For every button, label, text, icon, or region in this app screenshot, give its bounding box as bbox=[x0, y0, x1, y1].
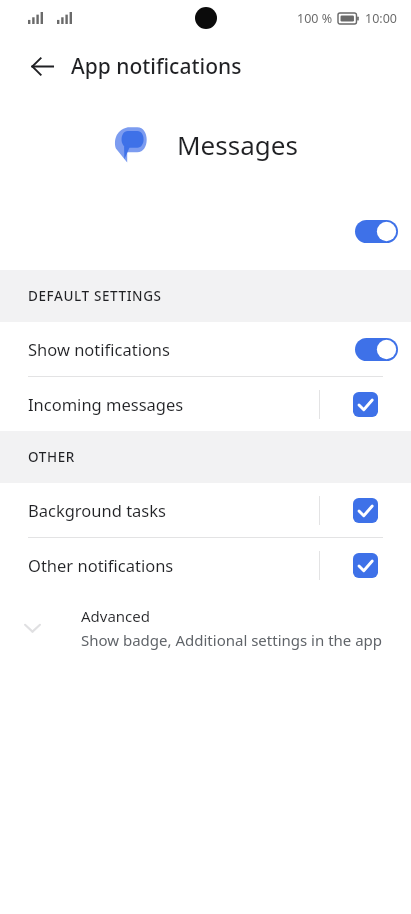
button[interactable]: Toggle all notifications bbox=[0, 192, 411, 270]
staticText: Other notifications bbox=[28, 554, 174, 576]
staticText: App notifications bbox=[71, 52, 242, 81]
button[interactable]: Back bbox=[18, 42, 66, 90]
staticText: OTHER bbox=[28, 448, 75, 466]
staticText: Messages bbox=[177, 127, 298, 162]
button[interactable]: Incoming messages bbox=[0, 377, 411, 431]
staticText: Show notifications bbox=[28, 338, 170, 360]
button[interactable]: Advanced bbox=[0, 592, 411, 664]
staticText: Incoming messages bbox=[28, 393, 184, 415]
staticText: 10:00 bbox=[365, 10, 397, 27]
staticText: Background tasks bbox=[28, 499, 166, 521]
staticText: Advanced bbox=[81, 606, 151, 626]
staticText: Show badge, Additional settings in the a… bbox=[81, 630, 383, 650]
staticText: 100 % bbox=[297, 10, 333, 27]
button[interactable]: Background tasks bbox=[0, 483, 411, 537]
button[interactable]: Other notifications bbox=[0, 538, 411, 592]
staticText: DEFAULT SETTINGS bbox=[28, 287, 162, 305]
button[interactable]: Show notifications bbox=[0, 322, 411, 376]
